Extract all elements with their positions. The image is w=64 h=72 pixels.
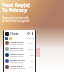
staticText: Good morning bbox=[10, 67, 26, 70]
staticText: 09:14 bbox=[28, 42, 34, 45]
staticText: Mark Evans bbox=[10, 40, 24, 43]
button[interactable]: More bbox=[31, 32, 34, 35]
staticText: See you soon bbox=[10, 49, 24, 52]
staticText: Your Key(s) To Privacy bbox=[2, 2, 30, 14]
staticText: Chats bbox=[10, 32, 19, 36]
staticText: Keeps your chats safe, private and encry… bbox=[2, 16, 30, 22]
button[interactable]: All bbox=[5, 37, 8, 40]
staticText: Daniel Woo bbox=[10, 52, 24, 55]
staticText: Jessica Lee bbox=[10, 46, 23, 49]
button[interactable]: Chris Park bbox=[5, 64, 34, 70]
staticText: 08:02 bbox=[28, 48, 34, 51]
staticText: Yest bbox=[30, 60, 34, 63]
staticText: Call me back bbox=[10, 61, 23, 64]
button[interactable]: Mark Evans bbox=[5, 40, 34, 46]
button[interactable]: Groups bbox=[9, 37, 12, 40]
staticText: Sent a photo bbox=[10, 43, 24, 46]
button[interactable]: Emma Stone bbox=[5, 58, 34, 64]
staticText: Yest bbox=[30, 54, 34, 57]
staticText: Emma Stone bbox=[10, 58, 25, 61]
staticText: Thanks a lot! bbox=[10, 55, 23, 58]
button[interactable]: Daniel Woo bbox=[5, 52, 34, 58]
staticText: Mon bbox=[29, 66, 34, 69]
staticText: Chris Park bbox=[10, 64, 23, 67]
button[interactable]: Jessica Lee bbox=[5, 46, 34, 52]
button[interactable]: App icon bbox=[5, 32, 9, 36]
button[interactable]: Search bbox=[27, 32, 30, 35]
